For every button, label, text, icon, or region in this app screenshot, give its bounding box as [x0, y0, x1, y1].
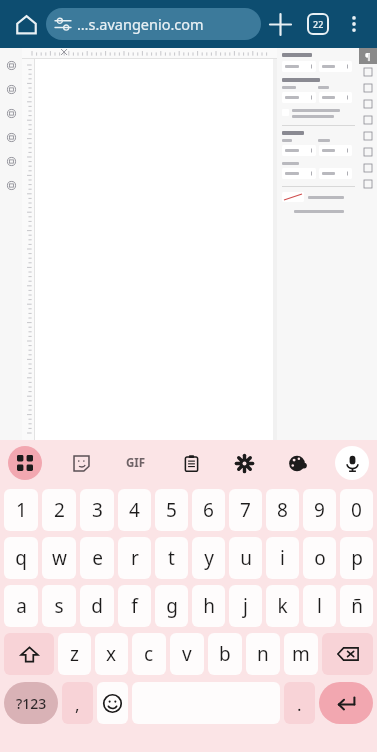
button[interactable]: e: [80, 537, 114, 579]
staticText: 6: [203, 497, 214, 523]
button[interactable]: Panel 1: [359, 64, 377, 80]
button[interactable]: w: [42, 537, 76, 579]
button[interactable]: Panel 7: [359, 160, 377, 176]
button[interactable]: o: [303, 537, 336, 579]
button[interactable]: t: [155, 537, 188, 579]
button[interactable]: 2: [42, 489, 76, 531]
button[interactable]: 4: [118, 489, 151, 531]
button[interactable]: Field: [282, 145, 316, 156]
button[interactable]: d: [80, 585, 114, 627]
button[interactable]: Panel 8: [359, 176, 377, 192]
button[interactable]: Enter: [319, 682, 373, 724]
staticText: i: [280, 545, 285, 571]
button[interactable]: 9: [303, 489, 336, 531]
button[interactable]: …s.avangenio.com: [46, 8, 261, 40]
button[interactable]: Panel 6: [359, 144, 377, 160]
button[interactable]: Panel 5: [359, 128, 377, 144]
button[interactable]: z: [58, 633, 91, 675]
button[interactable]: Field: [282, 61, 316, 72]
button[interactable]: ñ: [340, 585, 373, 627]
button[interactable]: Tool 5: [2, 152, 20, 170]
button[interactable]: Panel 4: [359, 112, 377, 128]
button[interactable]: q: [4, 537, 38, 579]
button[interactable]: x: [95, 633, 128, 675]
button[interactable]: Tool 2: [2, 80, 20, 98]
staticText: …s.avangenio.com: [77, 14, 204, 34]
button[interactable]: b: [208, 633, 242, 675]
button[interactable]: GIF: [119, 446, 153, 480]
button[interactable]: g: [155, 585, 188, 627]
button[interactable]: j: [229, 585, 262, 627]
button[interactable]: ,: [62, 682, 93, 724]
button[interactable]: 6: [192, 489, 225, 531]
staticText: f: [131, 593, 138, 619]
button[interactable]: Field: [282, 168, 316, 179]
button[interactable]: Panel 3: [359, 96, 377, 112]
button[interactable]: f: [118, 585, 151, 627]
button[interactable]: Field: [319, 145, 352, 156]
button[interactable]: 7: [229, 489, 262, 531]
button[interactable]: Field: [319, 92, 352, 103]
button[interactable]: h: [192, 585, 225, 627]
button[interactable]: k: [266, 585, 299, 627]
button[interactable]: Shift: [4, 633, 54, 675]
button[interactable]: y: [192, 537, 225, 579]
button[interactable]: Field: [319, 61, 352, 72]
button[interactable]: Stickers: [66, 448, 96, 478]
staticText: ñ: [351, 593, 363, 619]
staticText: a: [16, 593, 27, 619]
button[interactable]: v: [170, 633, 204, 675]
button[interactable]: Tool 4: [2, 128, 20, 146]
button[interactable]: m: [284, 633, 318, 675]
staticText: r: [131, 545, 139, 571]
button[interactable]: Tool 6: [2, 176, 20, 194]
staticText: u: [240, 545, 252, 571]
button[interactable]: 3: [80, 489, 114, 531]
button[interactable]: Switch keyboard mode: [8, 446, 42, 480]
button[interactable]: Field: [282, 92, 316, 103]
button[interactable]: r: [118, 537, 151, 579]
button[interactable]: Tool 3: [2, 104, 20, 122]
staticText: x: [106, 641, 117, 667]
button[interactable]: 0: [340, 489, 373, 531]
button[interactable]: s: [42, 585, 76, 627]
button[interactable]: i: [266, 537, 299, 579]
staticText: ?123: [16, 694, 47, 713]
button[interactable]: Field: [319, 168, 352, 179]
staticText: 5: [166, 497, 177, 523]
button[interactable]: Backspace: [322, 633, 373, 675]
button[interactable]: Emoji: [97, 682, 128, 724]
button[interactable]: .: [284, 682, 315, 724]
button[interactable]: Voice input: [335, 446, 369, 480]
button[interactable]: Themes: [282, 448, 312, 478]
button[interactable]: More options: [337, 7, 371, 41]
staticText: l: [317, 593, 322, 619]
button[interactable]: Background color: [282, 192, 304, 202]
staticText: 4: [129, 497, 140, 523]
button[interactable]: p: [340, 537, 373, 579]
button[interactable]: Open tabs: 22: [299, 5, 337, 43]
button[interactable]: u: [229, 537, 262, 579]
button[interactable]: n: [246, 633, 280, 675]
button[interactable]: Tool 1: [2, 56, 20, 74]
button[interactable]: c: [132, 633, 166, 675]
button[interactable]: Settings: [229, 448, 259, 478]
button[interactable]: 5: [155, 489, 188, 531]
staticText: h: [203, 593, 215, 619]
button[interactable]: New tab: [261, 5, 299, 43]
staticText: g: [166, 593, 178, 619]
button[interactable]: l: [303, 585, 336, 627]
staticText: 8: [277, 497, 288, 523]
button[interactable]: 8: [266, 489, 299, 531]
staticText: z: [70, 641, 79, 667]
button[interactable]: Home: [6, 4, 46, 44]
button[interactable]: ?123: [4, 682, 58, 724]
button[interactable]: 1: [4, 489, 38, 531]
button[interactable]: a: [4, 585, 38, 627]
button[interactable]: Clipboard: [176, 448, 206, 478]
button[interactable]: Panel 2: [359, 80, 377, 96]
button[interactable]: Paragraph panel: [359, 48, 377, 64]
